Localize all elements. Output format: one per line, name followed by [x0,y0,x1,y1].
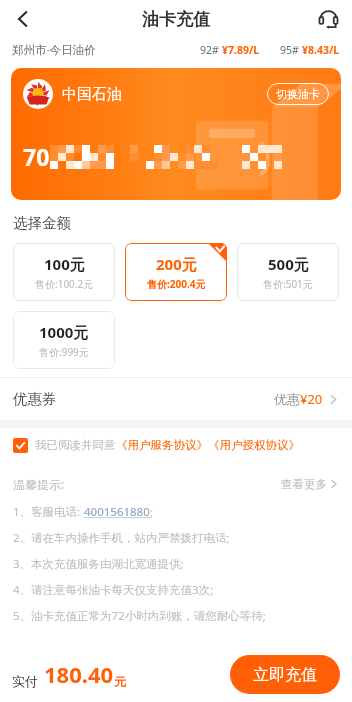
button[interactable]: 《用户授权协议》 [208,438,300,452]
button[interactable]: 优惠券 [0,378,352,420]
button[interactable]: Agree checkbox [13,438,28,453]
staticText: 我已阅读并同意 [35,438,116,452]
button[interactable]: 100元 [13,243,115,301]
button[interactable]: 立即充值 [230,655,340,694]
button[interactable]: 200元 [125,243,227,301]
staticText: 切换油卡 [276,87,320,101]
staticText: 200元 [156,254,197,274]
staticText: 92# [200,43,222,57]
staticText: 售价:999元 [39,345,89,359]
staticText: 1、客服电话: [13,504,84,520]
button[interactable]: 温馨提示: [13,476,339,492]
staticText: 4001561880 [84,504,150,520]
button[interactable]: Back [6,2,40,36]
staticText: 100元 [44,254,85,274]
staticText: 售价:100.2元 [35,277,94,291]
staticText: 180.40 [44,659,114,689]
staticText: 70 [23,141,50,172]
button[interactable]: 切换油卡 [267,83,329,105]
staticText: ; [150,504,154,520]
staticText: ¥8.43/L [302,43,340,57]
staticText: 温馨提示: [13,476,65,492]
staticText: ¥20 [300,390,323,408]
staticText: 《用户授权协议》 [208,438,300,452]
staticText: 中国石油 [62,85,122,104]
button[interactable]: 4001561880 [84,504,150,520]
staticText: 5、油卡充值正常为72小时内到账，请您耐心等待; [13,608,266,624]
staticText: 立即充值 [253,665,317,685]
staticText: 选择金额 [13,214,71,232]
staticText: 2、请在车内操作手机，站内严禁拨打电话; [13,530,230,546]
staticText: ¥7.89/L [222,43,260,57]
button[interactable]: 中国石油 [11,68,341,200]
staticText: 优惠 [274,391,300,407]
button[interactable]: 《用户服务协议》 [116,438,208,452]
button[interactable]: 1000元 [13,311,115,369]
staticText: 95# [280,43,302,57]
staticText: 售价:200.4元 [147,277,206,291]
staticText: 500元 [268,254,309,274]
staticText: 4、请注意每张油卡每天仅支持充值3次; [13,582,214,598]
staticText: 实付 [12,673,38,689]
button[interactable]: Customer service [312,3,344,35]
staticText: 《用户服务协议》 [116,438,208,452]
staticText: 油卡充值 [142,9,210,30]
button[interactable]: 500元 [237,243,339,301]
staticText: 优惠券 [13,390,57,408]
staticText: 查看更多 [281,477,327,491]
staticText: 3、本次充值服务由湖北宽通提供; [13,556,184,572]
staticText: 售价:501元 [263,277,313,291]
staticText: 元 [114,674,126,689]
staticText: 郑州市·今日油价 [12,42,96,58]
staticText: 1000元 [39,322,89,342]
